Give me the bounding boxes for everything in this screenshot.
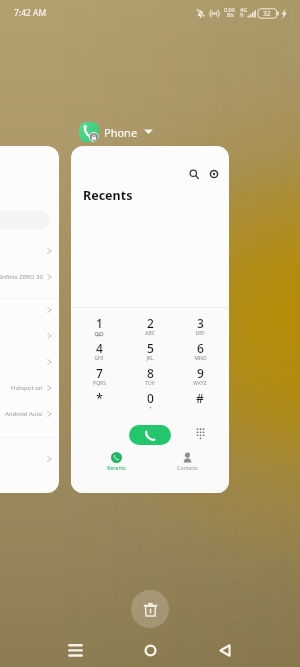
staticText: 4 — [96, 340, 103, 356]
staticText: 6 — [197, 340, 204, 356]
staticText: 4G — [240, 6, 248, 13]
staticText: WXYZ — [193, 380, 207, 387]
staticText: DEF — [195, 330, 205, 337]
button[interactable]: * — [74, 390, 124, 415]
staticText: Android Auto — [5, 410, 43, 418]
staticText: Hotspot on — [11, 384, 43, 392]
button[interactable]: Phone app — [79, 122, 99, 142]
staticText: * — [96, 390, 103, 406]
button[interactable]: 9 — [175, 365, 225, 390]
button[interactable]: Home — [132, 634, 168, 666]
staticText: Phone — [104, 125, 138, 140]
button[interactable]: 8 — [125, 365, 175, 390]
button[interactable]: 2 — [125, 315, 175, 340]
staticText: 32 — [263, 9, 271, 18]
staticText: GHI — [94, 355, 104, 362]
button[interactable] — [0, 447, 52, 471]
staticText: + — [149, 405, 152, 412]
button[interactable]: 3 — [175, 315, 225, 340]
button[interactable]: 5 — [125, 340, 175, 365]
button[interactable] — [0, 350, 52, 374]
staticText: PQRS — [93, 380, 106, 387]
staticText: 7:42 AM — [14, 7, 47, 19]
staticText: 2 — [147, 315, 154, 331]
staticText: MNO — [194, 355, 207, 362]
button[interactable]: 7 — [74, 365, 124, 390]
staticText: ABC — [145, 330, 155, 337]
staticText: 0.00 — [224, 6, 235, 13]
button[interactable]: 1 — [74, 315, 124, 340]
button[interactable]: Search — [185, 165, 203, 183]
staticText: TUV — [145, 380, 155, 387]
staticText: # — [196, 390, 204, 406]
button[interactable]: 6 — [175, 340, 225, 365]
button[interactable]: Back — [207, 634, 243, 666]
staticText: 9 — [197, 365, 204, 381]
staticText: Contacts — [177, 465, 198, 472]
button[interactable]: 0 — [125, 390, 175, 415]
staticText: 8 — [147, 365, 154, 381]
staticText: 1 — [96, 315, 103, 331]
staticText: Recents — [107, 465, 126, 472]
button[interactable]: Infinix ZERO 30 — [0, 265, 52, 289]
button[interactable]: More options — [141, 124, 155, 138]
button[interactable]: Call — [129, 425, 171, 445]
staticText: ½ — [240, 12, 244, 18]
staticText: Recents — [83, 187, 133, 204]
button[interactable]: Android Auto — [0, 402, 52, 426]
staticText: 5 — [147, 340, 154, 356]
button[interactable]: Contacts — [165, 452, 209, 478]
button[interactable]: Recent apps — [57, 634, 93, 666]
button[interactable]: Dialpad — [192, 424, 210, 442]
staticText: Infinix ZERO 30 — [0, 273, 43, 281]
button[interactable] — [0, 324, 52, 348]
button[interactable]: Recents — [94, 452, 138, 478]
button[interactable]: Settings — [205, 165, 223, 183]
staticText: 0 — [147, 390, 154, 406]
button[interactable]: Hotspot on — [0, 376, 52, 400]
staticText: 7 — [96, 365, 103, 381]
button[interactable]: # — [175, 390, 225, 415]
button[interactable] — [0, 239, 52, 263]
button[interactable]: 4 — [74, 340, 124, 365]
staticText: B/s — [227, 12, 234, 18]
button[interactable]: Clear all — [131, 590, 169, 628]
button[interactable] — [0, 298, 52, 322]
staticText: 3 — [197, 315, 204, 331]
staticText: JKL — [146, 355, 154, 362]
